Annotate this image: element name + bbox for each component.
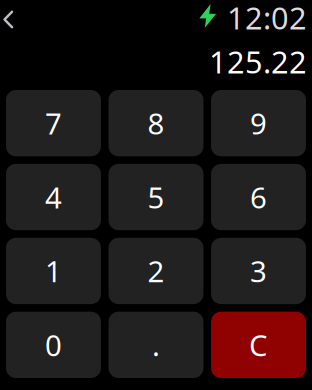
button[interactable]: 6	[211, 164, 306, 230]
staticText: 7	[45, 104, 62, 143]
staticText: 2	[147, 251, 164, 290]
button[interactable]: 4	[6, 164, 101, 230]
staticText: 0	[45, 325, 62, 364]
button[interactable]: 1	[6, 238, 101, 304]
button[interactable]: 3	[211, 238, 306, 304]
button[interactable]: 0	[6, 312, 101, 378]
staticText: 4	[45, 178, 62, 217]
staticText: 6	[250, 178, 267, 217]
button[interactable]: 8	[108, 90, 203, 156]
button[interactable]: Back	[0, 0, 23, 34]
staticText: 12:02	[227, 0, 307, 38]
button[interactable]: 2	[108, 238, 203, 304]
staticText: 8	[147, 104, 164, 143]
staticText: 125.22	[209, 41, 307, 82]
button[interactable]: C	[211, 312, 306, 378]
button[interactable]: 9	[211, 90, 306, 156]
button[interactable]: .	[108, 312, 203, 378]
staticText: 3	[250, 251, 267, 290]
staticText: 1	[45, 251, 62, 290]
staticText: 5	[147, 178, 164, 217]
staticText: .	[152, 325, 160, 364]
button[interactable]: 7	[6, 90, 101, 156]
staticText: C	[249, 325, 268, 364]
button[interactable]: 5	[108, 164, 203, 230]
staticText: 9	[250, 104, 267, 143]
